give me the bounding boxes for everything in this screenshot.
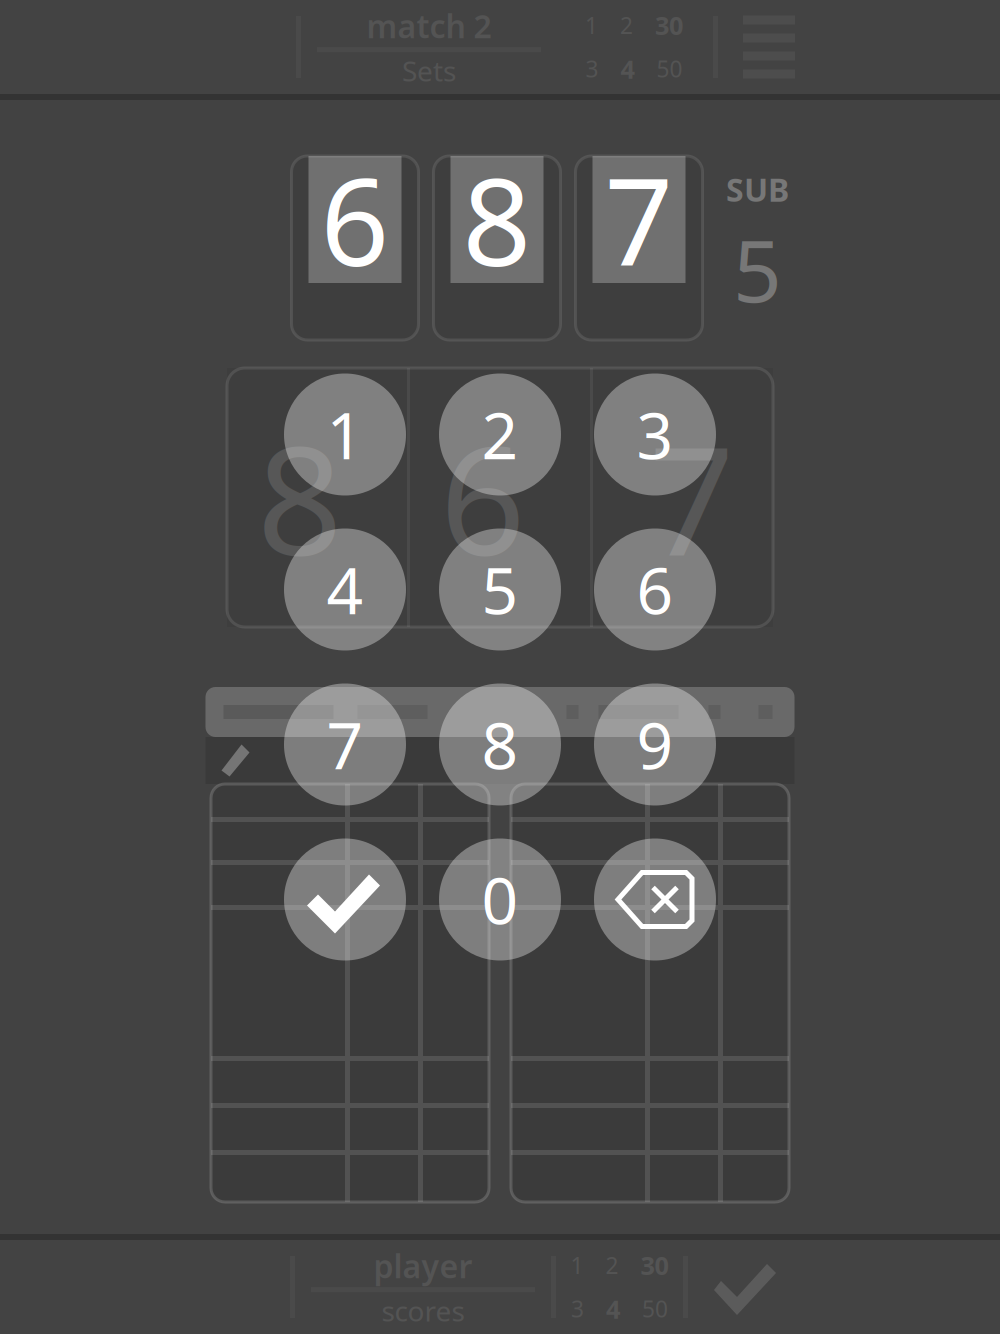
staticText: 3 (636, 392, 673, 477)
staticText: 2 (620, 10, 633, 40)
button[interactable]: 2 (439, 373, 561, 495)
staticText: 50 (656, 54, 682, 84)
button[interactable]: 7 (575, 156, 702, 340)
staticText: 4 (620, 52, 634, 86)
staticText: 7 (326, 702, 363, 787)
staticText: 30 (640, 1248, 668, 1282)
button[interactable]: 6 (594, 528, 716, 650)
staticText: 30 (655, 8, 683, 42)
staticText: 1 (570, 1250, 583, 1280)
staticText: 8 (462, 140, 531, 299)
staticText: player (373, 1245, 472, 1287)
button[interactable]: 4 (284, 528, 406, 650)
button[interactable]: 1 (284, 373, 406, 495)
staticText: 5 (481, 547, 518, 632)
staticText: 2 (481, 392, 518, 477)
staticText: 6 (320, 140, 389, 299)
staticText: SUB (726, 168, 789, 211)
button[interactable]: 5 (439, 528, 561, 650)
button[interactable]: Confirm (284, 838, 406, 960)
staticText: 6 (440, 398, 525, 597)
button[interactable]: 3 (594, 373, 716, 495)
staticText: 9 (636, 702, 673, 787)
staticText: 1 (585, 10, 598, 40)
staticText: 8 (481, 702, 518, 787)
button[interactable]: Menu (736, 8, 802, 86)
staticText: Sets (402, 52, 456, 89)
staticText: 50 (642, 1294, 668, 1324)
button[interactable]: 8 (433, 156, 560, 340)
staticText: 7 (604, 140, 673, 299)
staticText: 5 (733, 213, 782, 326)
staticText: 0 (481, 857, 518, 942)
staticText: 3 (571, 1294, 584, 1324)
button[interactable]: 6 (291, 156, 418, 340)
button[interactable]: 0 (439, 838, 561, 960)
staticText: 7 (649, 398, 734, 597)
staticText: 8 (257, 398, 342, 597)
staticText: 4 (606, 1292, 620, 1326)
button[interactable]: 8 (439, 683, 561, 805)
staticText: 6 (636, 547, 673, 632)
button[interactable]: Confirm (708, 1251, 784, 1323)
staticText: scores (381, 1292, 464, 1329)
button[interactable]: 7 (284, 683, 406, 805)
button[interactable]: Delete (594, 838, 716, 960)
staticText: 2 (605, 1250, 618, 1280)
staticText: 3 (585, 54, 598, 84)
staticText: 1 (326, 392, 363, 477)
button[interactable]: 9 (594, 683, 716, 805)
staticText: match 2 (366, 5, 491, 47)
staticText: 4 (326, 547, 363, 632)
